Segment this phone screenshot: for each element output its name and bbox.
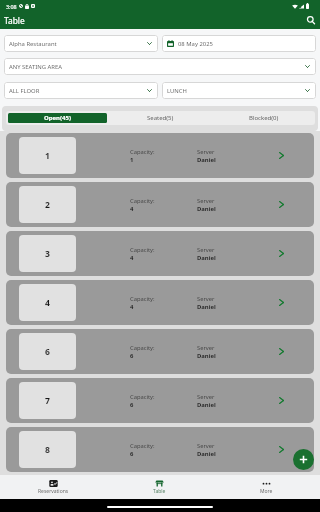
staticText: 4 bbox=[45, 297, 50, 309]
staticText: ALL FLOOR bbox=[9, 87, 40, 95]
button[interactable]: Add table bbox=[293, 449, 314, 470]
staticText: Daniel bbox=[197, 254, 216, 262]
staticText: 4 bbox=[130, 254, 134, 262]
button[interactable]: More bbox=[213, 475, 320, 499]
staticText: Table bbox=[153, 488, 166, 495]
staticText: Server bbox=[197, 442, 215, 450]
staticText: Server bbox=[197, 344, 215, 352]
staticText: 1 bbox=[45, 150, 50, 162]
staticText: Alpha Restaurant bbox=[9, 40, 57, 48]
staticText: 3:08 bbox=[6, 3, 17, 10]
staticText: Capacity: bbox=[130, 246, 155, 254]
staticText: 6 bbox=[130, 352, 134, 360]
button[interactable]: 08 May 2025 bbox=[162, 35, 316, 52]
staticText: 08 May 2025 bbox=[178, 40, 213, 48]
staticText: Capacity: bbox=[130, 344, 155, 352]
staticText: Daniel bbox=[197, 450, 216, 458]
button[interactable]: Alpha Restaurant bbox=[4, 35, 158, 52]
button[interactable]: Table bbox=[106, 475, 213, 499]
button[interactable]: 3 bbox=[6, 231, 314, 276]
staticText: Capacity: bbox=[130, 148, 155, 156]
staticText: 4 bbox=[130, 205, 134, 213]
button[interactable]: Blocked(0) bbox=[214, 113, 313, 123]
button[interactable]: 4 bbox=[6, 280, 314, 325]
button[interactable]: 1 bbox=[6, 133, 314, 178]
button[interactable]: Open(45) bbox=[8, 113, 107, 123]
staticText: 1 bbox=[130, 156, 134, 164]
staticText: LUNCH bbox=[167, 87, 187, 95]
staticText: Capacity: bbox=[130, 197, 155, 205]
button[interactable]: 8 bbox=[6, 427, 314, 472]
staticText: 8 bbox=[45, 444, 50, 456]
staticText: 6 bbox=[130, 401, 134, 409]
staticText: 3 bbox=[45, 248, 50, 260]
staticText: Server bbox=[197, 295, 215, 303]
staticText: Daniel bbox=[197, 156, 216, 164]
staticText: Table bbox=[4, 15, 25, 26]
staticText: Server bbox=[197, 246, 215, 254]
staticText: ANY SEATING AREA bbox=[9, 63, 63, 71]
button[interactable]: LUNCH bbox=[162, 82, 316, 99]
staticText: 6 bbox=[45, 346, 50, 358]
staticText: Blocked(0) bbox=[249, 114, 279, 122]
staticText: Server bbox=[197, 393, 215, 401]
staticText: Capacity: bbox=[130, 442, 155, 450]
staticText: Server bbox=[197, 148, 215, 156]
staticText: 2 bbox=[45, 199, 50, 211]
button[interactable]: ANY SEATING AREA bbox=[4, 58, 316, 75]
button[interactable]: 7 bbox=[6, 378, 314, 423]
button[interactable]: Search bbox=[302, 11, 319, 28]
staticText: Reservations bbox=[38, 488, 69, 495]
staticText: Daniel bbox=[197, 401, 216, 409]
button[interactable]: ALL FLOOR bbox=[4, 82, 158, 99]
staticText: 4 bbox=[130, 303, 134, 311]
staticText: More bbox=[260, 488, 273, 495]
staticText: Seated(5) bbox=[147, 114, 174, 122]
staticText: Daniel bbox=[197, 352, 216, 360]
staticText: 6 bbox=[130, 450, 134, 458]
staticText: Open(45) bbox=[44, 114, 71, 122]
button[interactable]: 6 bbox=[6, 329, 314, 374]
staticText: Daniel bbox=[197, 303, 216, 311]
staticText: Server bbox=[197, 197, 215, 205]
staticText: Capacity: bbox=[130, 295, 155, 303]
staticText: Daniel bbox=[197, 205, 216, 213]
button[interactable]: Reservations bbox=[0, 475, 106, 499]
staticText: 7 bbox=[45, 395, 50, 407]
staticText: Capacity: bbox=[130, 393, 155, 401]
button[interactable]: Seated(5) bbox=[111, 113, 210, 123]
button[interactable]: 2 bbox=[6, 182, 314, 227]
